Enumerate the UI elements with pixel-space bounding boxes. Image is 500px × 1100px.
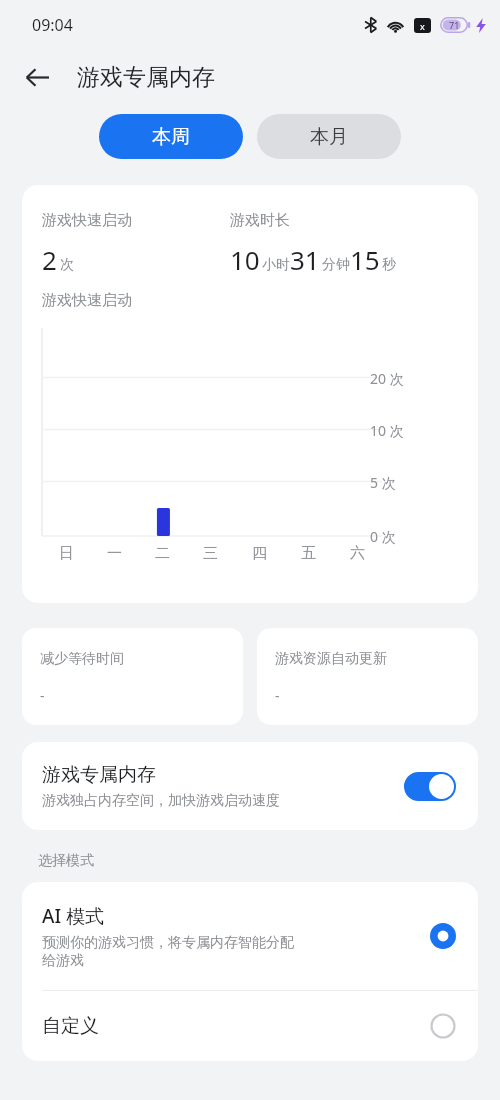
staticText: 预测你的游戏习惯，将专属内存智能分配 [42, 934, 294, 952]
staticText: - [275, 686, 280, 705]
staticText: 分钟 [322, 256, 350, 274]
staticText: 游戏快速启动 [42, 291, 132, 310]
staticText: 六 [350, 544, 365, 563]
staticText: 0 次 [370, 527, 396, 546]
button[interactable]: 本周 [99, 114, 243, 159]
button[interactable]: Back [14, 54, 60, 100]
staticText: 游戏快速启动 [42, 211, 132, 230]
staticText: 一 [107, 544, 122, 563]
staticText: 10 [230, 242, 260, 277]
staticText: 自定义 [42, 1014, 428, 1038]
button[interactable]: AI 模式 [22, 882, 478, 990]
staticText: 游戏专属内存 [77, 63, 215, 92]
staticText: 选择模式 [38, 852, 94, 870]
staticText: 游戏时长 [230, 211, 290, 230]
staticText: 二 [155, 544, 170, 563]
staticText: 小时 [262, 256, 290, 274]
button[interactable]: 本月 [257, 114, 401, 159]
staticText: 三 [203, 544, 218, 563]
button[interactable]: 游戏资源自动更新 [257, 628, 478, 725]
staticText: 15 [350, 242, 380, 277]
staticText: 20 次 [370, 369, 404, 388]
staticText: - [40, 686, 45, 705]
button[interactable]: 减少等待时间 [22, 628, 243, 725]
staticText: 游戏独占内存空间，加快游戏启动速度 [42, 792, 280, 810]
button[interactable]: Toggle game dedicated memory [404, 772, 456, 801]
staticText: 秒 [382, 256, 396, 274]
staticText: 四 [252, 544, 267, 563]
staticText: 游戏资源自动更新 [275, 650, 387, 668]
staticText: 31 [290, 242, 320, 277]
staticText: 次 [60, 256, 74, 274]
button[interactable]: 自定义 [22, 991, 478, 1061]
staticText: 给游戏 [42, 952, 84, 970]
staticText: 五 [301, 544, 316, 563]
staticText: x [420, 20, 425, 32]
staticText: 减少等待时间 [40, 650, 124, 668]
other: AI mode selected [428, 921, 458, 951]
staticText: 71 [449, 19, 460, 31]
staticText: 10 次 [370, 421, 404, 440]
staticText: AI 模式 [42, 903, 105, 929]
staticText: 日 [59, 544, 74, 563]
staticText: 本周 [152, 125, 190, 149]
staticText: 2 [42, 242, 57, 277]
staticText: 09:04 [32, 14, 73, 36]
staticText: 游戏专属内存 [42, 763, 156, 787]
other: Custom mode [428, 1011, 458, 1041]
button[interactable]: 游戏专属内存 [22, 742, 478, 830]
staticText: 5 次 [370, 473, 396, 492]
staticText: 本月 [310, 125, 348, 149]
